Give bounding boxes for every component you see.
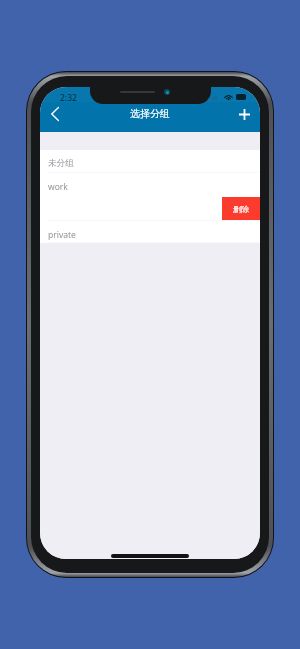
button[interactable]: 删除 [222,197,260,220]
staticText: 2:32 [60,92,77,104]
staticText: 删除 [233,204,249,214]
staticText: 选择分组 [130,107,170,120]
button[interactable]: Back [43,102,67,126]
button[interactable]: 未分组 [40,150,260,173]
button[interactable]: Add [232,102,256,126]
staticText: 未分组 [48,158,74,169]
button[interactable]: work [40,173,260,221]
button[interactable]: private [40,221,260,243]
staticText: work [48,181,68,193]
staticText: private [48,229,76,241]
